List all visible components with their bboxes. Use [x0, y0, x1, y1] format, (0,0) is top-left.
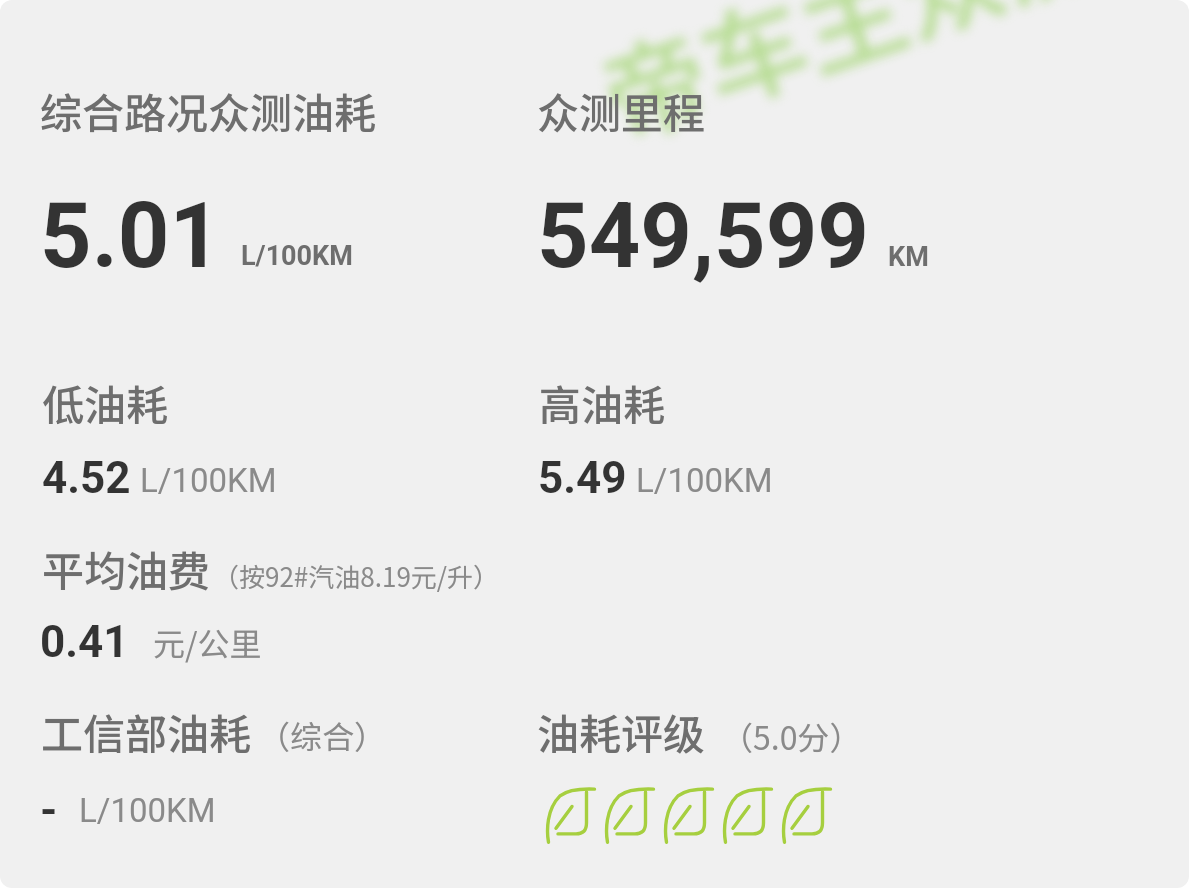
- staticText: 5.49: [538, 452, 627, 504]
- staticText: 油耗评级: [537, 701, 706, 762]
- staticText: 综合路况众测油耗: [40, 80, 377, 141]
- staticText: 工信部油耗: [41, 701, 252, 762]
- staticText: （5.0分）: [721, 713, 862, 759]
- staticText: 0.41: [40, 616, 129, 668]
- staticText: KM: [888, 241, 929, 273]
- staticText: 高油耗: [539, 372, 666, 433]
- staticText: 平均油费: [42, 538, 211, 599]
- staticText: L/100KM: [140, 461, 277, 500]
- button[interactable]: 高油耗: [523, 362, 993, 512]
- button[interactable]: 综合路况众测油耗: [26, 70, 496, 290]
- button[interactable]: 众测里程: [523, 70, 993, 290]
- staticText: 4.52: [42, 452, 131, 504]
- staticText: 549,599: [537, 184, 869, 289]
- staticText: L/100KM: [79, 791, 216, 830]
- staticText: 5.01: [40, 184, 222, 289]
- button[interactable]: 油耗评级: [523, 691, 993, 846]
- staticText: （按92#汽油8.19元/升）: [213, 557, 500, 595]
- staticText: （综合）: [258, 712, 387, 758]
- other: Fuel economy rating: 5 of 5 leaves: [545, 788, 840, 844]
- button[interactable]: 平均油费: [26, 528, 496, 678]
- staticText: 帝车主众测: [580, 0, 1122, 169]
- staticText: 众测里程: [537, 80, 706, 141]
- staticText: L/100KM: [636, 461, 773, 500]
- staticText: L/100KM: [241, 240, 353, 272]
- staticText: 低油耗: [42, 372, 169, 433]
- button[interactable]: 低油耗: [26, 362, 496, 512]
- button[interactable]: 工信部油耗: [26, 691, 496, 846]
- staticText: 元/公里: [153, 619, 262, 665]
- staticText: -: [40, 784, 58, 836]
